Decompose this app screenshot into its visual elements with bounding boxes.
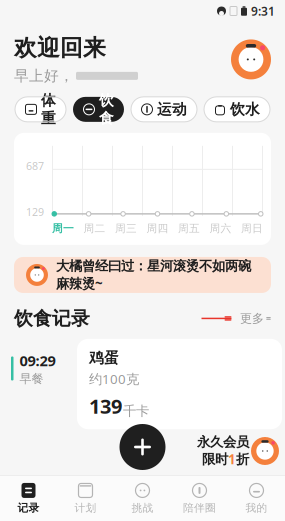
staticText: 体重 bbox=[41, 91, 56, 127]
button[interactable]: 运动 bbox=[131, 97, 197, 122]
staticText: 陪伴圈 bbox=[183, 501, 216, 514]
staticText: 09:29 bbox=[19, 351, 55, 370]
staticText: 欢迎回来 bbox=[14, 34, 106, 62]
staticText: 大橘曾经曰过：星河滚烫不如两碗麻辣烫~ bbox=[56, 258, 251, 292]
staticText: 周二 bbox=[83, 222, 105, 235]
staticText: 9:31 bbox=[251, 3, 275, 19]
button[interactable]: 饮水 bbox=[204, 97, 270, 122]
staticText: 饮食记录 bbox=[14, 307, 90, 330]
button[interactable]: 体重 bbox=[15, 97, 66, 122]
staticText: 饮水 bbox=[230, 100, 260, 118]
staticText: 千卡 bbox=[123, 403, 149, 419]
staticText: 129 bbox=[26, 205, 44, 219]
staticText: 周四 bbox=[146, 222, 168, 235]
staticText: 挑战 bbox=[131, 501, 153, 514]
staticText: 687 bbox=[26, 159, 44, 173]
button[interactable]: 更多 bbox=[236, 311, 271, 326]
staticText: 更多 bbox=[240, 311, 264, 326]
staticText: 139 bbox=[89, 393, 122, 419]
button[interactable]: 永久会员 bbox=[197, 434, 279, 468]
button[interactable]: 大橘曾经曰过：星河滚烫不如两碗麻辣烫~ bbox=[14, 257, 271, 293]
staticText: 计划 bbox=[74, 501, 96, 514]
staticText: 早餐 bbox=[19, 371, 43, 386]
staticText: 约100克 bbox=[89, 370, 139, 388]
staticText: 周五 bbox=[178, 222, 200, 235]
staticText: 早上好， bbox=[14, 67, 74, 85]
button[interactable]: 鸡蛋 bbox=[77, 339, 282, 429]
button[interactable]: 记录 bbox=[0, 482, 57, 515]
staticText: 折 bbox=[236, 451, 249, 467]
button[interactable]: 个人头像 bbox=[231, 39, 271, 79]
staticText: 周六 bbox=[209, 222, 231, 235]
button[interactable]: 陪伴圈 bbox=[171, 482, 228, 515]
staticText: 鸡蛋 bbox=[89, 349, 119, 367]
button[interactable]: 饮食 bbox=[73, 97, 124, 122]
staticText: 限时 bbox=[202, 451, 228, 467]
staticText: 周一 bbox=[52, 222, 74, 235]
button[interactable]: 我的 bbox=[228, 482, 285, 515]
staticText: 周日 bbox=[241, 222, 263, 235]
button[interactable]: 添加记录 bbox=[119, 424, 165, 470]
staticText: 1 bbox=[228, 450, 236, 468]
button[interactable]: 挑战 bbox=[114, 482, 171, 515]
staticText: 周三 bbox=[115, 222, 137, 235]
staticText: 记录 bbox=[17, 501, 39, 514]
staticText: 运动 bbox=[157, 100, 187, 118]
button[interactable]: 计划 bbox=[57, 482, 114, 515]
staticText: 我的 bbox=[245, 501, 267, 514]
staticText: 永久会员 bbox=[197, 434, 249, 450]
staticText: 饮食 bbox=[99, 91, 114, 127]
